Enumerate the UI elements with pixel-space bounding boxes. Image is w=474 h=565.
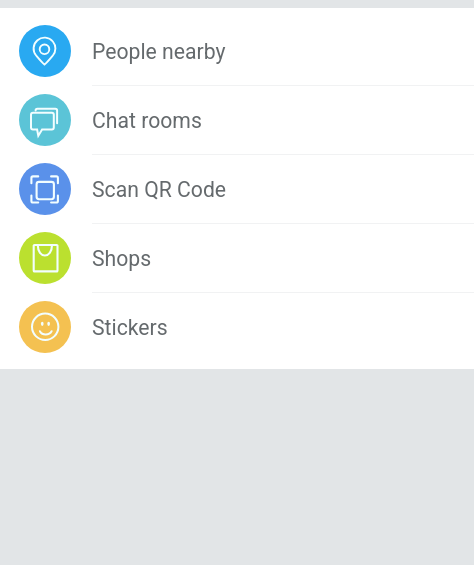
other: Chat rooms (19, 94, 71, 146)
other: People nearby (19, 25, 71, 77)
other: Shops (19, 232, 71, 284)
other: Stickers (19, 301, 71, 353)
staticText: People nearby (92, 39, 226, 64)
staticText: Chat rooms (92, 108, 202, 133)
other: Scan QR Code (19, 163, 71, 215)
button[interactable]: Scan QR Code (0, 154, 474, 223)
button[interactable]: Shops (0, 223, 474, 292)
staticText: Scan QR Code (92, 177, 227, 202)
button[interactable]: Stickers (0, 292, 474, 361)
button[interactable]: Chat rooms (0, 85, 474, 154)
staticText: Stickers (92, 315, 168, 340)
staticText: Shops (92, 246, 152, 271)
button[interactable]: People nearby (0, 16, 474, 85)
